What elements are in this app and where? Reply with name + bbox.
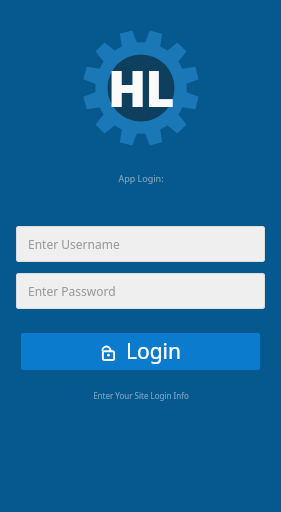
other: Login — [100, 342, 117, 362]
staticText: App Login: — [118, 172, 164, 184]
staticText: Login — [126, 337, 182, 366]
staticText: Enter Password — [28, 283, 116, 299]
staticText: Enter Username — [28, 236, 120, 252]
button[interactable]: Login — [21, 333, 260, 370]
button[interactable]: Enter Password — [16, 273, 265, 309]
staticText: HL — [108, 54, 174, 122]
button[interactable]: Enter Username — [16, 226, 265, 262]
staticText: Enter Your Site Login Info — [93, 390, 189, 401]
